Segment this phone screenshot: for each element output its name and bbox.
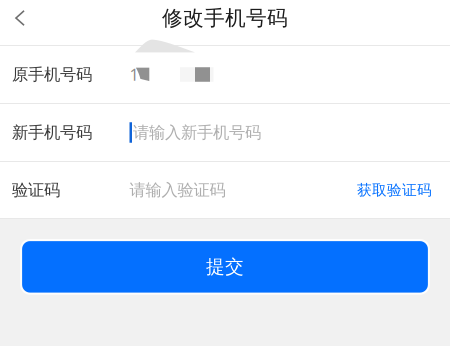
staticText: 验证码 <box>12 180 60 200</box>
staticText: 提交 <box>206 255 244 279</box>
staticText: 新手机号码 <box>12 122 92 143</box>
staticText: 请输入新手机号码 <box>133 122 261 143</box>
button[interactable]: 提交 <box>20 239 430 295</box>
button[interactable]: 获取验证码 <box>357 181 432 199</box>
staticText: 1 <box>129 63 138 86</box>
button[interactable]: Back <box>0 1 40 35</box>
staticText: 请输入验证码 <box>129 180 225 200</box>
staticText: 获取验证码 <box>357 181 432 199</box>
staticText: 修改手机号码 <box>162 5 288 31</box>
staticText: 原手机号码 <box>12 64 92 85</box>
